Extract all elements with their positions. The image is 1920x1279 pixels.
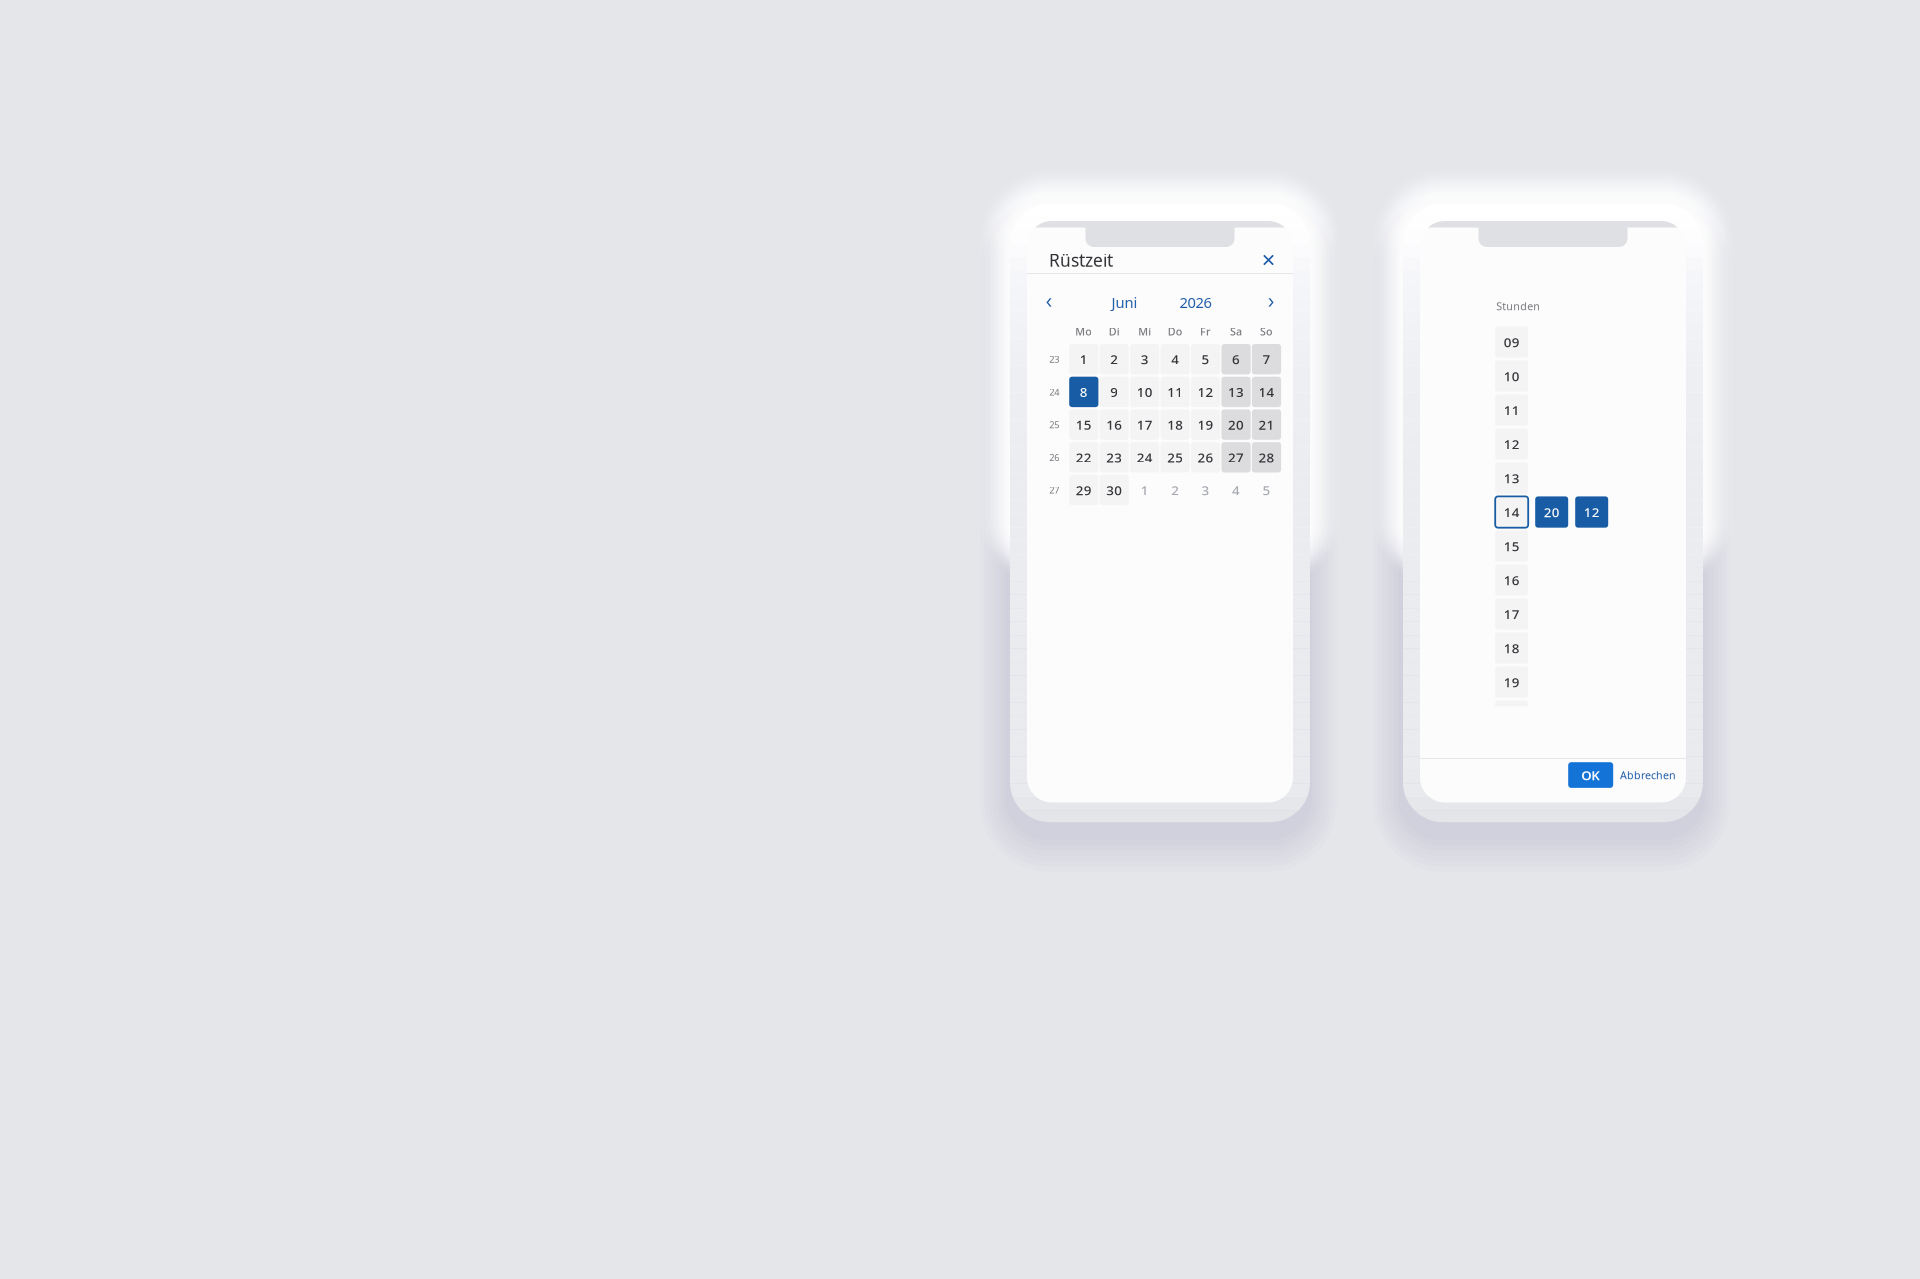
button[interactable]: 28 xyxy=(1252,442,1281,472)
staticText: 18 xyxy=(1504,639,1520,657)
button[interactable]: 10 xyxy=(1495,360,1528,392)
staticText: Rüstzeit xyxy=(1049,248,1113,271)
staticText: So xyxy=(1260,324,1273,338)
button[interactable]: 15 xyxy=(1495,530,1528,562)
button[interactable]: 17 xyxy=(1130,409,1159,440)
button[interactable]: 14 xyxy=(1252,377,1281,407)
staticText: Fr xyxy=(1200,324,1211,338)
button[interactable]: Nächster Monat xyxy=(1258,288,1284,317)
button[interactable]: 30 xyxy=(1100,475,1129,505)
button[interactable]: 14 xyxy=(1495,496,1528,528)
button[interactable]: 18 xyxy=(1160,409,1190,440)
button[interactable]: 20 xyxy=(1221,409,1251,440)
staticText: 21 xyxy=(1258,416,1274,433)
staticText: Di xyxy=(1109,324,1120,338)
button[interactable]: Abbrechen xyxy=(1613,762,1676,788)
button[interactable]: 22 xyxy=(1069,442,1098,472)
staticText: 17 xyxy=(1137,416,1153,433)
button[interactable]: 23 xyxy=(1100,442,1129,472)
button[interactable]: 27 xyxy=(1221,442,1251,472)
button[interactable]: 20 xyxy=(1535,496,1568,528)
button[interactable]: 7 xyxy=(1252,344,1281,374)
button[interactable]: 2026 xyxy=(1161,288,1229,317)
button[interactable]: OK xyxy=(1568,762,1613,788)
staticText: 27 xyxy=(1049,484,1059,496)
staticText: 4 xyxy=(1171,350,1179,368)
staticText: 4 xyxy=(1232,481,1240,499)
staticText: 14 xyxy=(1258,383,1274,401)
button[interactable]: 15 xyxy=(1069,409,1098,440)
staticText: 15 xyxy=(1076,416,1092,433)
staticText: 26 xyxy=(1049,451,1059,463)
staticText: 10 xyxy=(1137,383,1153,401)
button[interactable]: 17 xyxy=(1495,598,1528,630)
staticText: Do xyxy=(1168,324,1183,338)
staticText: 2 xyxy=(1110,350,1118,368)
staticText: 16 xyxy=(1504,571,1520,589)
button[interactable]: 12 xyxy=(1191,377,1220,407)
button[interactable]: 13 xyxy=(1495,462,1528,494)
staticText: 5 xyxy=(1262,481,1270,499)
button[interactable]: Juni xyxy=(1090,288,1158,317)
button[interactable]: 19 xyxy=(1191,409,1220,440)
button[interactable]: 4 xyxy=(1160,344,1190,374)
staticText: 20 xyxy=(1544,503,1560,521)
staticText: 24 xyxy=(1049,386,1059,398)
button[interactable]: 6 xyxy=(1221,344,1251,374)
staticText: Stunden xyxy=(1496,299,1540,313)
button[interactable]: 3 xyxy=(1191,475,1220,505)
button[interactable]: 18 xyxy=(1495,632,1528,664)
staticText: Abbrechen xyxy=(1620,768,1676,782)
button[interactable]: 11 xyxy=(1495,394,1528,426)
button[interactable]: Schließen xyxy=(1255,247,1281,273)
button[interactable]: 11 xyxy=(1160,377,1190,407)
button[interactable]: Vorheriger Monat xyxy=(1036,288,1062,317)
staticText: Sa xyxy=(1230,324,1242,338)
staticText: 9 xyxy=(1110,383,1118,401)
button[interactable]: 8 xyxy=(1069,377,1098,407)
staticText: 11 xyxy=(1504,401,1520,419)
button[interactable]: 19 xyxy=(1495,666,1528,698)
staticText: 27 xyxy=(1228,448,1244,466)
staticText: 30 xyxy=(1106,481,1122,499)
button[interactable]: 13 xyxy=(1221,377,1251,407)
staticText: 13 xyxy=(1228,383,1244,401)
staticText: 19 xyxy=(1198,416,1214,433)
button[interactable]: 12 xyxy=(1575,496,1608,528)
button[interactable]: 26 xyxy=(1191,442,1220,472)
staticText: 20 xyxy=(1228,416,1244,433)
staticText: 22 xyxy=(1076,448,1092,466)
button[interactable]: 25 xyxy=(1160,442,1190,472)
button[interactable]: 5 xyxy=(1191,344,1220,374)
button[interactable]: 5 xyxy=(1252,475,1281,505)
staticText: 8 xyxy=(1080,383,1088,401)
staticText: Mi xyxy=(1138,324,1151,338)
button[interactable]: 3 xyxy=(1130,344,1159,374)
button[interactable]: 2 xyxy=(1160,475,1190,505)
staticText: 1 xyxy=(1080,350,1088,368)
staticText: 12 xyxy=(1198,383,1214,401)
button[interactable]: 1 xyxy=(1130,475,1159,505)
staticText: 19 xyxy=(1504,673,1520,691)
button[interactable]: 21 xyxy=(1252,409,1281,440)
button[interactable]: 2 xyxy=(1100,344,1129,374)
button[interactable]: 16 xyxy=(1495,564,1528,596)
staticText: 2026 xyxy=(1179,293,1211,312)
button[interactable]: 09 xyxy=(1495,326,1528,358)
button[interactable]: 1 xyxy=(1069,344,1098,374)
staticText: 11 xyxy=(1167,383,1183,401)
staticText: 23 xyxy=(1049,353,1059,365)
staticText: 26 xyxy=(1198,448,1214,466)
staticText: 5 xyxy=(1202,350,1210,368)
button[interactable]: 24 xyxy=(1130,442,1159,472)
button[interactable]: 4 xyxy=(1221,475,1251,505)
staticText: 16 xyxy=(1106,416,1122,433)
button[interactable]: 9 xyxy=(1100,377,1129,407)
button[interactable]: 16 xyxy=(1100,409,1129,440)
button[interactable]: 29 xyxy=(1069,475,1098,505)
staticText: 24 xyxy=(1137,448,1153,466)
staticText: 12 xyxy=(1504,435,1520,453)
button[interactable]: 12 xyxy=(1495,428,1528,460)
button[interactable]: 10 xyxy=(1130,377,1159,407)
